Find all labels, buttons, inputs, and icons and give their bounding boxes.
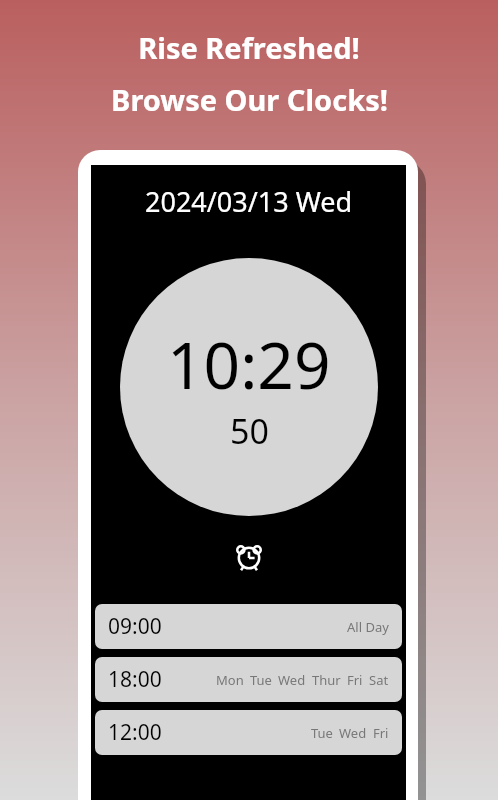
staticText: Fri [347, 671, 363, 689]
staticText: Browse Our Clocks! [111, 80, 388, 119]
staticText: 12:00 [108, 718, 162, 747]
staticText: Wed [339, 724, 367, 742]
button[interactable]: Add alarm [227, 534, 271, 578]
button[interactable]: 2024/03/13 Wed [145, 183, 353, 220]
staticText: 18:00 [108, 665, 162, 694]
staticText: Sat [369, 671, 389, 689]
button[interactable]: 10:29 [120, 258, 378, 516]
staticText: Rise Refreshed! [138, 28, 360, 67]
staticText: Wed [278, 671, 306, 689]
staticText: 10:29 [167, 321, 331, 408]
staticText: Fri [373, 724, 389, 742]
staticText: 50 [230, 408, 269, 454]
staticText: Tue [250, 671, 272, 689]
staticText: 09:00 [108, 612, 162, 641]
staticText: Thur [312, 671, 341, 689]
button[interactable]: 12:00 [95, 710, 402, 755]
button[interactable]: 18:00 [95, 657, 402, 702]
button[interactable]: 09:00 [95, 604, 402, 649]
staticText: Tue [311, 724, 333, 742]
staticText: Mon [216, 671, 244, 689]
staticText: All Day [347, 618, 389, 636]
